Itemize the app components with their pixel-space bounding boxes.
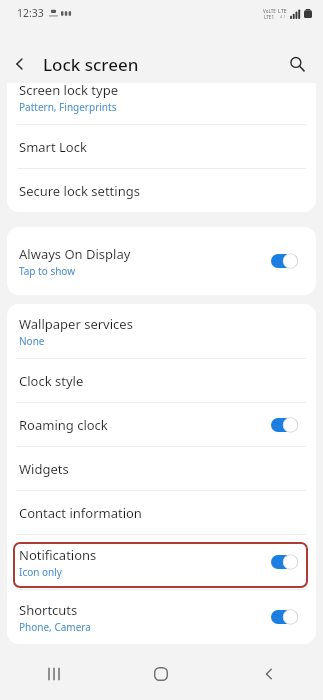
staticText: Roaming clock xyxy=(19,416,108,434)
staticText: LTE1 xyxy=(264,14,275,20)
staticText: Shortcuts xyxy=(19,601,78,619)
button[interactable]: Contact information xyxy=(7,491,316,534)
staticText: Pattern, Fingerprints xyxy=(19,100,117,114)
staticText: Clock style xyxy=(19,372,84,390)
staticText: Notifications xyxy=(19,546,97,564)
button[interactable]: Notifications xyxy=(271,554,298,570)
staticText: Widgets xyxy=(19,460,69,478)
staticText: Phone, Camera xyxy=(19,620,91,634)
button[interactable]: Roaming clock xyxy=(271,417,298,433)
staticText: Secure lock settings xyxy=(19,182,140,200)
staticText: Icon only xyxy=(19,565,62,579)
button[interactable]: Smart Lock xyxy=(7,125,316,168)
button[interactable]: Home xyxy=(107,648,215,700)
button[interactable]: Clock style xyxy=(7,359,316,402)
staticText: 12:33 xyxy=(17,6,44,20)
button[interactable]: Shortcuts xyxy=(271,609,298,625)
button[interactable]: Widgets xyxy=(7,447,316,490)
button[interactable]: Recent apps xyxy=(0,648,107,700)
staticText: Tap to show xyxy=(19,264,76,278)
button[interactable]: Secure lock settings xyxy=(7,169,316,212)
button[interactable]: Always On Display xyxy=(7,227,316,295)
staticText: Always On Display xyxy=(19,245,131,263)
staticText: VoLTE xyxy=(263,8,276,14)
button[interactable]: Shortcuts xyxy=(7,590,316,644)
staticText: LTE xyxy=(278,7,287,14)
button[interactable]: Always On Display xyxy=(271,253,298,269)
staticText: Contact information xyxy=(19,504,142,522)
staticText: Screen lock type xyxy=(19,81,118,99)
button[interactable]: Wallpaper services xyxy=(7,304,316,358)
button[interactable]: Navigate up xyxy=(10,54,30,74)
button[interactable]: Roaming clock xyxy=(7,403,316,446)
staticText: Smart Lock xyxy=(19,138,87,156)
button[interactable]: Back xyxy=(215,648,323,700)
button[interactable]: Notifications xyxy=(7,535,316,589)
button[interactable]: Screen lock type xyxy=(7,70,316,124)
staticText: 4 1 xyxy=(280,14,286,20)
button[interactable]: Search xyxy=(286,53,308,75)
staticText: None xyxy=(19,334,45,348)
staticText: Wallpaper services xyxy=(19,315,133,333)
staticText: Lock screen xyxy=(43,53,139,76)
